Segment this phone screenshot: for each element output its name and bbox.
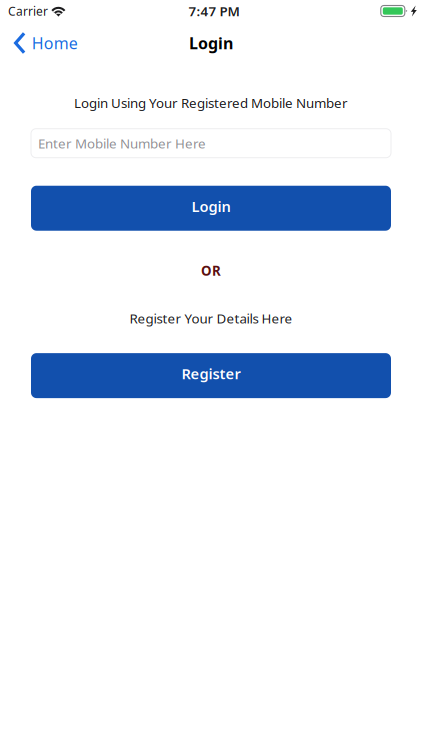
button[interactable]: Login — [31, 186, 391, 231]
staticText: OR — [201, 262, 221, 279]
staticText: Register — [181, 364, 240, 383]
staticText: Home — [32, 32, 78, 54]
button[interactable]: Enter Mobile Number Here — [31, 129, 391, 158]
staticText: Login — [191, 196, 230, 216]
staticText: 7:47 PM — [188, 2, 239, 20]
staticText: Enter Mobile Number Here — [38, 134, 206, 152]
staticText: Carrier — [8, 3, 48, 19]
button[interactable]: Register — [31, 353, 391, 398]
staticText: Login Using Your Registered Mobile Numbe… — [74, 94, 348, 112]
button[interactable]: Home — [0, 26, 88, 60]
staticText: Login — [189, 32, 233, 54]
staticText: Register Your Details Here — [129, 309, 292, 327]
